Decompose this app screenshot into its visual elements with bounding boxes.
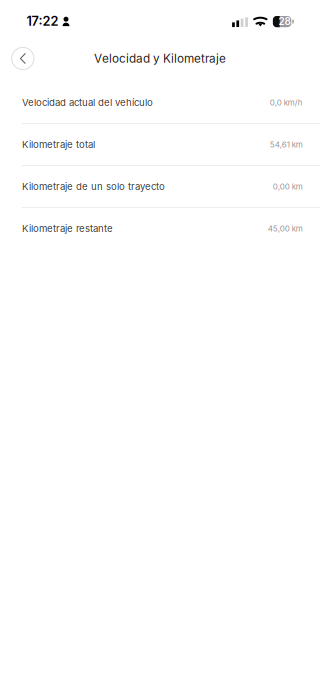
button[interactable]: Kilometraje total — [0, 124, 320, 166]
button[interactable]: Kilometraje de un solo trayecto — [0, 166, 320, 208]
staticText: Kilometraje restante — [22, 223, 113, 234]
staticText: 0,00 km — [273, 182, 303, 191]
staticText: Kilometraje de un solo trayecto — [22, 181, 165, 192]
button[interactable]: Kilometraje restante — [0, 208, 320, 249]
staticText: 54,61 km — [270, 140, 303, 149]
staticText: Velocidad y Kilometraje — [94, 51, 226, 66]
staticText: 28 — [278, 15, 290, 27]
staticText: 0,0 km/h — [270, 98, 303, 107]
button[interactable]: Back — [8, 43, 38, 73]
staticText: Velocidad actual del vehículo — [22, 97, 153, 108]
staticText: Kilometraje total — [22, 139, 95, 150]
button[interactable]: Velocidad actual del vehículo — [0, 82, 320, 124]
staticText: 17:22 — [26, 13, 58, 29]
staticText: 45,00 km — [268, 224, 303, 233]
